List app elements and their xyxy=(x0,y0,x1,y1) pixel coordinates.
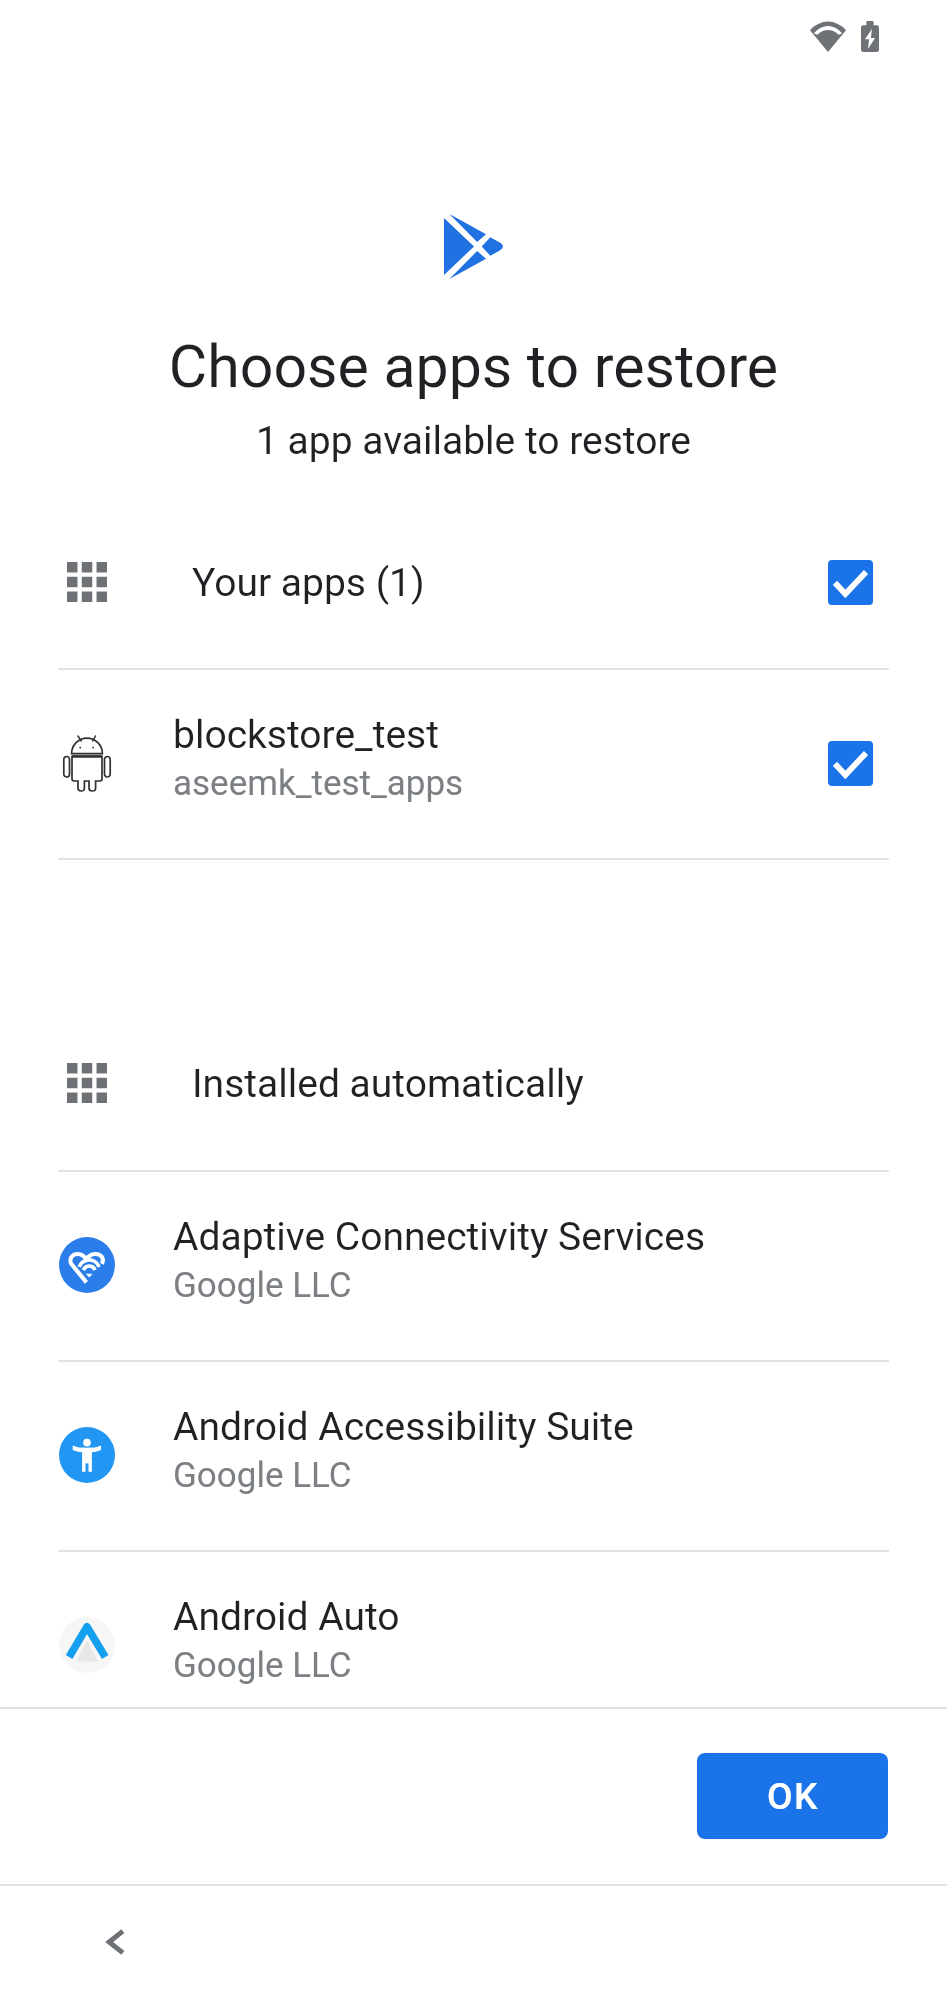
staticText: Google LLC xyxy=(173,1455,352,1496)
staticText: Android Auto xyxy=(173,1594,400,1640)
button[interactable]: Your apps (1) xyxy=(0,520,947,668)
button[interactable]: Android Auto xyxy=(0,1552,947,1707)
button[interactable]: Selected xyxy=(828,741,873,786)
button[interactable]: Android Accessibility Suite xyxy=(0,1362,947,1550)
button[interactable]: Installed automatically xyxy=(0,1008,947,1170)
staticText: Adaptive Connectivity Services xyxy=(173,1214,706,1260)
staticText: Android Accessibility Suite xyxy=(173,1404,634,1450)
button[interactable]: OK xyxy=(697,1753,888,1839)
button[interactable]: Adaptive Connectivity Services xyxy=(0,1172,947,1360)
staticText: OK xyxy=(767,1775,819,1818)
button[interactable]: Selected xyxy=(828,560,873,605)
staticText: blockstore_test xyxy=(173,712,440,758)
staticText: aseemk_test_apps xyxy=(173,763,464,804)
staticText: Choose apps to restore xyxy=(0,332,947,401)
staticText: Installed automatically xyxy=(192,1061,584,1107)
staticText: 1 app available to restore xyxy=(0,418,947,464)
button[interactable]: Back xyxy=(80,1906,152,1978)
staticText: Google LLC xyxy=(173,1265,352,1306)
button[interactable]: blockstore_test xyxy=(0,670,947,858)
staticText: Your apps (1) xyxy=(192,560,425,606)
staticText: Google LLC xyxy=(173,1645,352,1686)
